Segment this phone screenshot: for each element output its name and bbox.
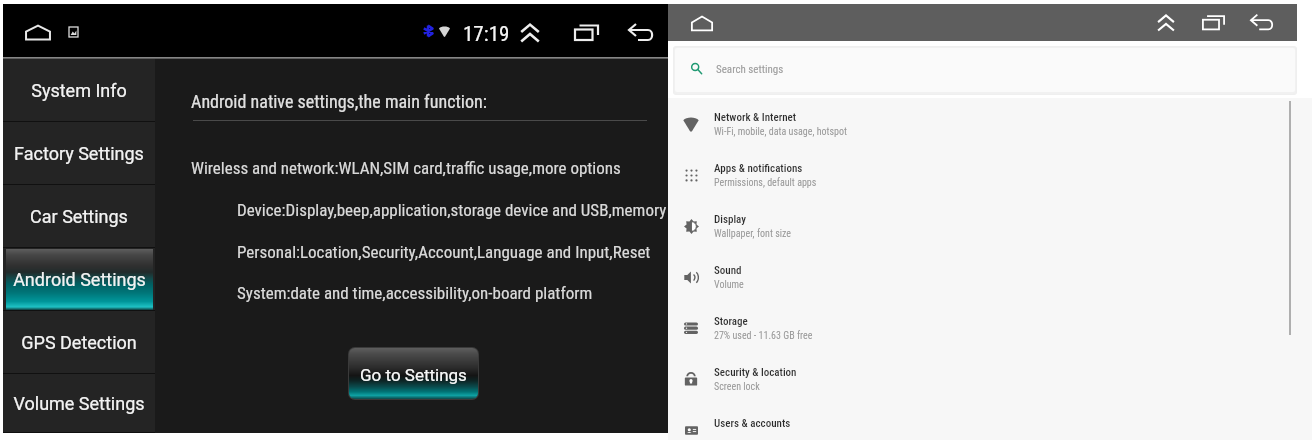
button[interactable]: Car Settings <box>3 185 155 248</box>
button[interactable]: Back <box>622 14 659 51</box>
staticText: Storage <box>714 315 748 328</box>
button[interactable]: Back <box>1246 7 1277 38</box>
button[interactable]: Storage <box>668 302 1312 353</box>
staticText: Security & location <box>714 366 797 379</box>
staticText: 17:19 <box>463 22 510 47</box>
staticText: Permissions, default apps <box>714 177 817 189</box>
staticText: Display <box>714 213 746 226</box>
button[interactable]: Recent apps <box>1198 7 1229 38</box>
staticText: Search settings <box>716 63 784 76</box>
staticText: Apps & notifications <box>714 162 803 175</box>
staticText: Personal:Location,Security,Account,Langu… <box>237 242 651 262</box>
staticText: Wallpaper, font size <box>714 228 792 240</box>
button[interactable]: Sound <box>668 251 1312 302</box>
staticText: Android native settings,the main functio… <box>191 91 487 112</box>
button[interactable]: Recent apps <box>568 14 605 51</box>
staticText: 27% used - 11.63 GB free <box>714 330 813 342</box>
staticText: Wireless and network:WLAN,SIM card,traff… <box>191 158 621 178</box>
staticText: Device:Display,beep,application,storage … <box>237 200 667 220</box>
button[interactable]: GPS Detection <box>3 311 155 374</box>
staticText: Volume <box>714 279 744 291</box>
staticText: Users & accounts <box>714 417 791 430</box>
staticText: Android Settings <box>13 269 146 290</box>
button[interactable]: Display <box>668 200 1312 251</box>
staticText: Sound <box>714 264 742 277</box>
staticText: GPS Detection <box>21 332 137 353</box>
button[interactable]: System Info <box>3 59 155 122</box>
button[interactable]: Go to Settings <box>349 348 478 399</box>
staticText: Volume Settings <box>13 393 145 414</box>
staticText: System:date and time,accessibility,on-bo… <box>237 283 593 303</box>
staticText: Screen lock <box>714 381 760 393</box>
button[interactable]: Home <box>18 13 57 52</box>
button[interactable]: Expand status bar <box>1150 7 1181 38</box>
button[interactable]: Users & accounts <box>668 404 1312 440</box>
button[interactable]: Expand status bar <box>511 14 548 51</box>
button[interactable]: Search settings <box>675 48 1295 92</box>
button[interactable]: Volume Settings <box>3 374 155 433</box>
button[interactable]: Factory Settings <box>3 122 155 185</box>
button[interactable]: Security & location <box>668 353 1312 404</box>
staticText: System Info <box>31 80 127 101</box>
staticText: Factory Settings <box>14 143 144 164</box>
staticText: Car Settings <box>30 206 128 227</box>
button[interactable]: Apps & notifications <box>668 149 1312 200</box>
button[interactable]: Home <box>687 8 717 38</box>
button[interactable]: Network & Internet <box>668 98 1312 149</box>
staticText: Go to Settings <box>360 365 467 385</box>
staticText: Network & Internet <box>714 111 797 124</box>
staticText: Wi-Fi, mobile, data usage, hotspot <box>714 126 847 138</box>
button[interactable]: Android Settings <box>3 248 155 311</box>
button[interactable]: Screenshot <box>59 17 88 46</box>
